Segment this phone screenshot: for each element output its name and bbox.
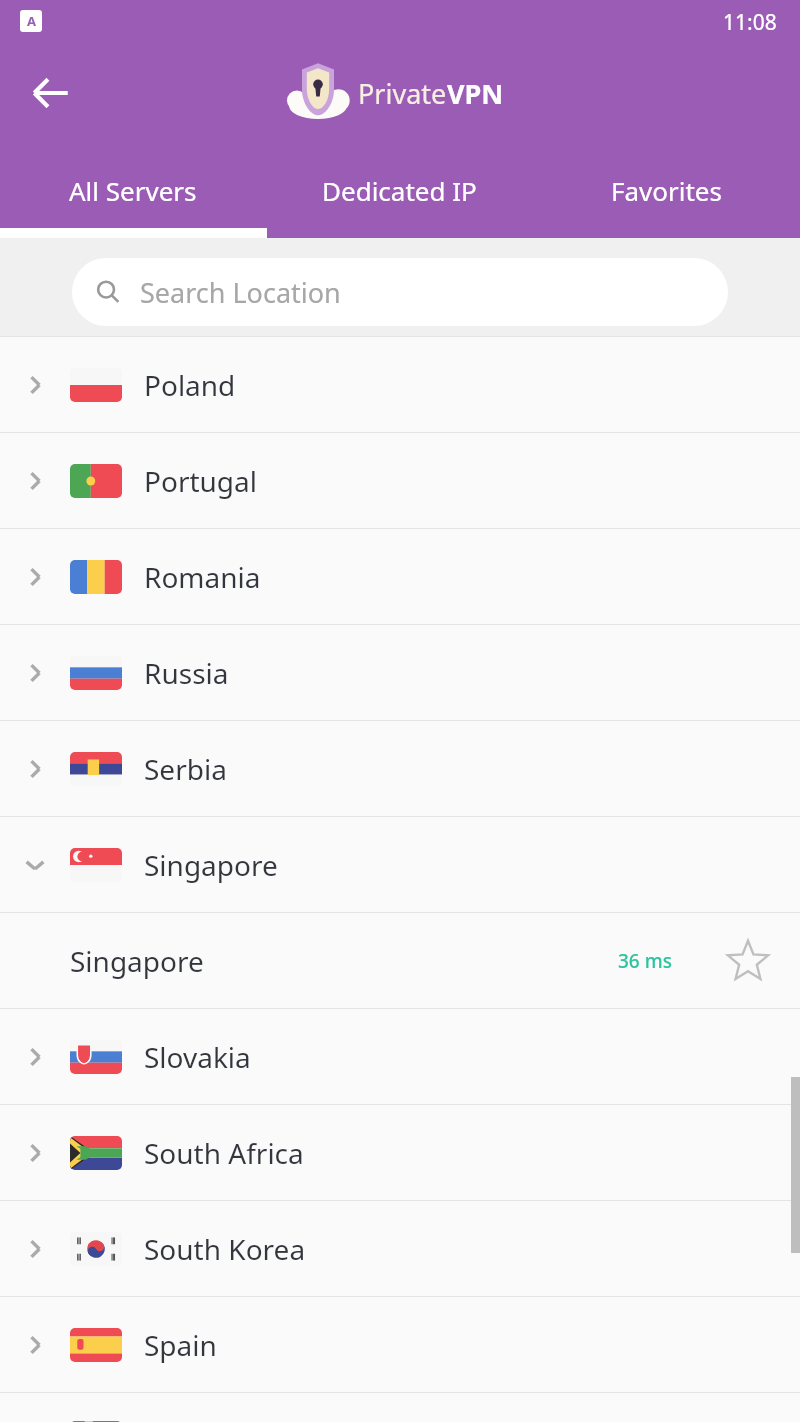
button[interactable]: Add to favorites	[720, 933, 776, 989]
staticText: Dedicated IP	[322, 173, 477, 208]
button[interactable]: South Africa	[0, 1105, 800, 1200]
staticText: Spain	[144, 1326, 217, 1364]
button[interactable]: Dedicated IP	[266, 160, 533, 220]
button[interactable]: Poland	[0, 337, 800, 432]
staticText: All Servers	[69, 173, 197, 208]
staticText: VPN	[447, 75, 504, 112]
button[interactable]: Slovakia	[0, 1009, 800, 1104]
staticText: Poland	[144, 366, 236, 404]
staticText: Singapore	[70, 942, 204, 980]
button[interactable]: South Korea	[0, 1201, 800, 1296]
button[interactable]: Singapore	[0, 817, 800, 912]
staticText: A	[27, 12, 36, 30]
staticText: Serbia	[144, 750, 227, 788]
button[interactable]: Singapore	[0, 913, 800, 1008]
staticText: Favorites	[611, 173, 722, 208]
staticText: Portugal	[144, 462, 258, 500]
staticText: Private	[358, 75, 447, 112]
button[interactable]: Spain	[0, 1297, 800, 1392]
staticText: 36 ms	[618, 948, 672, 974]
button[interactable]: Serbia	[0, 721, 800, 816]
button[interactable]: Romania	[0, 529, 800, 624]
staticText: Romania	[144, 558, 261, 596]
button[interactable]: Back	[16, 58, 86, 128]
button[interactable]: Search Location	[72, 258, 728, 326]
button[interactable]: Russia	[0, 625, 800, 720]
staticText: South Korea	[144, 1230, 306, 1268]
staticText: Search Location	[140, 274, 341, 311]
staticText: Russia	[144, 654, 229, 692]
button[interactable]: Favorites	[533, 160, 800, 220]
button[interactable]: All Servers	[0, 160, 266, 220]
staticText: Singapore	[144, 846, 278, 884]
staticText: Slovakia	[144, 1038, 251, 1076]
button[interactable]: Portugal	[0, 433, 800, 528]
staticText: 11:08	[723, 8, 777, 37]
staticText: South Africa	[144, 1134, 304, 1172]
